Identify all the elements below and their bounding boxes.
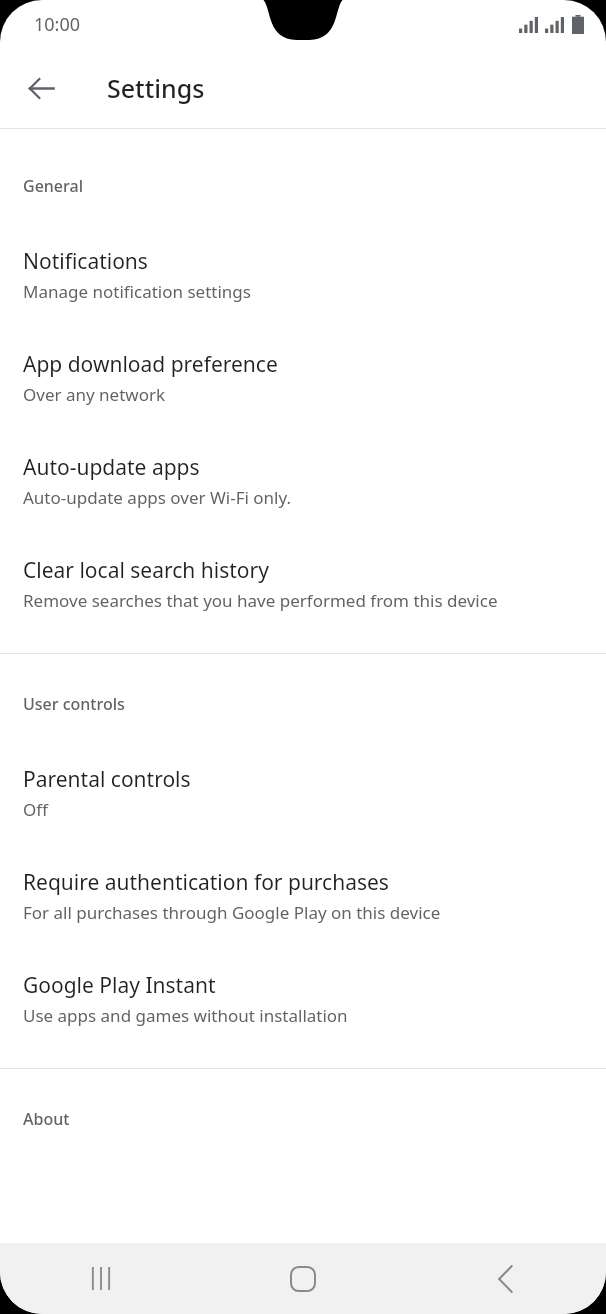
staticText: App download preference (23, 350, 278, 379)
staticText: Manage notification settings (23, 280, 251, 303)
staticText: Google Play Instant (23, 971, 216, 1000)
staticText: Use apps and games without installation (23, 1004, 348, 1027)
button[interactable]: Auto-update apps (0, 453, 606, 509)
staticText: User controls (23, 693, 125, 715)
staticText: For all purchases through Google Play on… (23, 901, 441, 924)
staticText: Auto-update apps (23, 453, 200, 482)
button[interactable]: Google Play Instant (0, 971, 606, 1027)
staticText: About (23, 1108, 70, 1130)
button[interactable]: Parental controls (0, 765, 606, 821)
staticText: Over any network (23, 383, 166, 406)
button[interactable]: Recent apps (0, 1243, 202, 1314)
staticText: Off (23, 798, 48, 821)
staticText: Settings (107, 71, 205, 105)
button[interactable]: Back (404, 1243, 606, 1314)
button[interactable]: Back (13, 60, 69, 116)
button[interactable]: Require authentication for purchases (0, 868, 606, 924)
button[interactable]: App download preference (0, 350, 606, 406)
staticText: Parental controls (23, 765, 191, 794)
staticText: Auto-update apps over Wi-Fi only. (23, 486, 292, 509)
button[interactable]: Home (202, 1243, 404, 1314)
button[interactable]: Clear local search history (0, 556, 606, 612)
staticText: Clear local search history (23, 556, 269, 585)
staticText: 10:00 (34, 12, 81, 37)
staticText: Require authentication for purchases (23, 868, 389, 897)
staticText: General (23, 175, 83, 197)
staticText: Remove searches that you have performed … (23, 589, 498, 612)
button[interactable]: Notifications (0, 247, 606, 303)
staticText: Notifications (23, 247, 148, 276)
